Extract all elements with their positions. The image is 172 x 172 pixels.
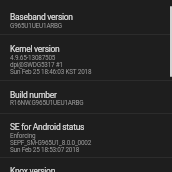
button[interactable]: Kernel version (0, 35, 172, 81)
button[interactable]: Knox version (0, 158, 172, 172)
button[interactable]: SE for Android status (0, 114, 172, 158)
staticText: Baseband version (10, 12, 73, 22)
staticText: Enforcing SEPF_SM-G965U1_8.0.0_0002 Sun … (10, 132, 92, 153)
staticText: SE for Android status (10, 122, 85, 132)
staticText: R16NW.G965U1UEU1ARBG (10, 99, 84, 107)
staticText: G965U1UEU1ARBG (10, 22, 63, 30)
button[interactable]: Build number (0, 81, 172, 114)
button[interactable]: Baseband version (0, 0, 172, 35)
staticText: Knox version (10, 166, 56, 172)
staticText: Build number (10, 90, 57, 100)
staticText: 4.9.65-13087505 dpi@SWDG5317 #1 Sun Feb … (10, 54, 92, 75)
staticText: Kernel version (10, 44, 60, 54)
